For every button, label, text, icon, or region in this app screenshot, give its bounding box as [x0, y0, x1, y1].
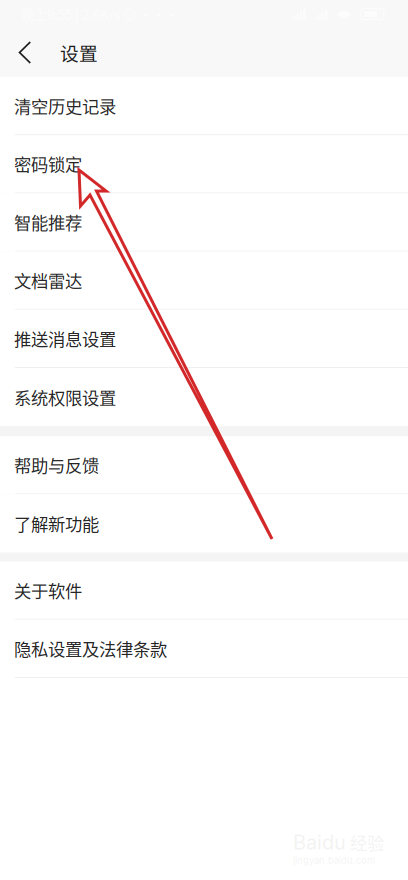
staticText: 了解新功能: [14, 511, 99, 536]
staticText: Baidu: [293, 830, 346, 854]
staticText: 经验: [350, 830, 384, 855]
staticText: 设置: [60, 39, 98, 66]
button[interactable]: 了解新功能: [0, 494, 408, 553]
staticText: 隐私设置及法律条款: [14, 636, 167, 661]
staticText: 系统权限设置: [14, 385, 116, 410]
button[interactable]: 系统权限设置: [0, 368, 408, 426]
staticText: 推送消息设置: [14, 326, 116, 351]
button[interactable]: 密码锁定: [0, 135, 408, 193]
staticText: 清空历史记录: [14, 93, 116, 118]
button[interactable]: 智能推荐: [0, 193, 408, 252]
button[interactable]: 文档雷达: [0, 252, 408, 310]
button[interactable]: 关于软件: [0, 562, 408, 620]
staticText: 智能推荐: [14, 209, 82, 235]
staticText: 关于软件: [14, 578, 82, 603]
staticText: jingyan.baidu.com: [293, 855, 375, 866]
staticText: 帮助与反馈: [14, 452, 99, 477]
button[interactable]: 清空历史记录: [0, 77, 408, 135]
staticText: 文档雷达: [14, 268, 82, 293]
staticText: 密码锁定: [14, 151, 82, 176]
button[interactable]: 推送消息设置: [0, 310, 408, 368]
button[interactable]: 帮助与反馈: [0, 436, 408, 494]
button[interactable]: Back: [0, 28, 50, 77]
button[interactable]: 隐私设置及法律条款: [0, 620, 408, 678]
